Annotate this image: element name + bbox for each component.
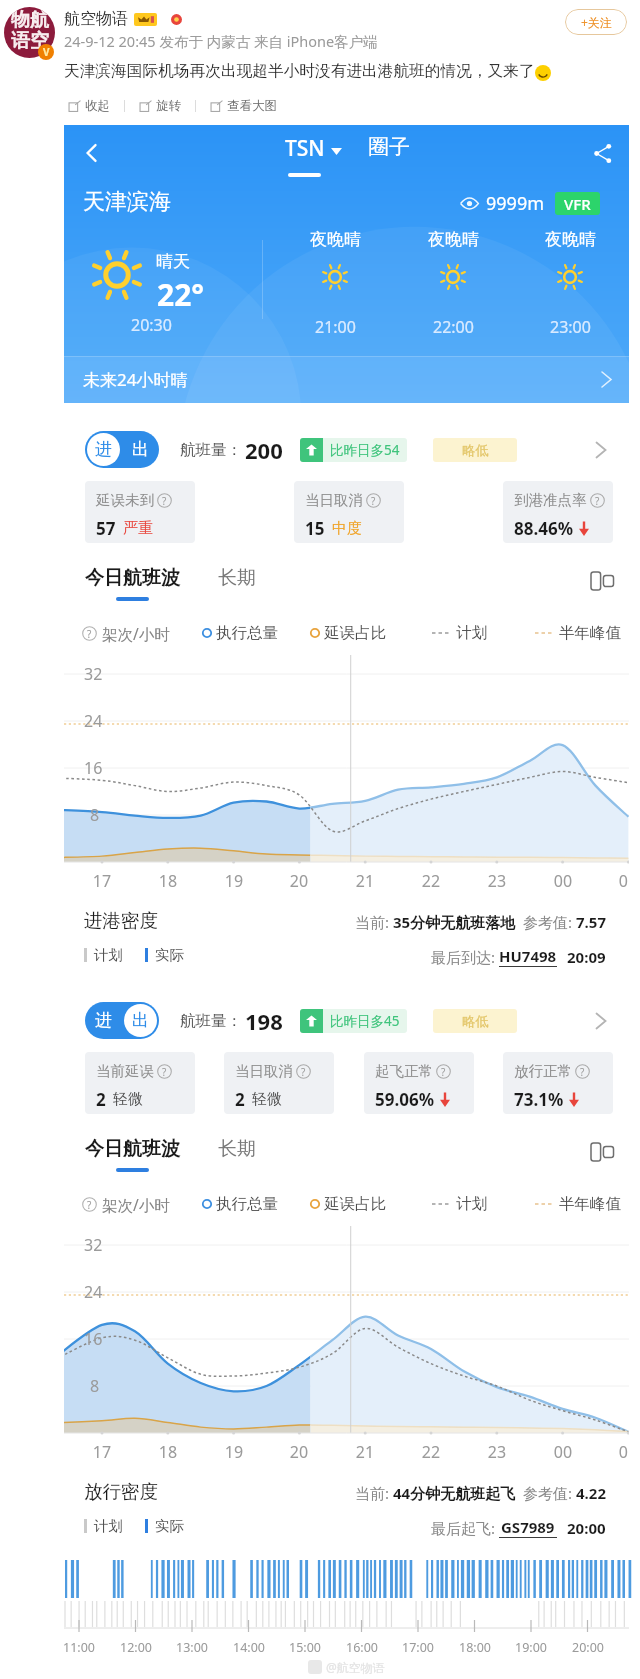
staticText: 20	[283, 1441, 315, 1463]
button[interactable]: Details	[587, 1007, 615, 1035]
staticText: ?	[87, 1198, 92, 1212]
button[interactable]: Full screen	[587, 1137, 617, 1167]
button[interactable]: 延误未到	[85, 481, 195, 543]
button[interactable]: 长期	[218, 1137, 256, 1161]
staticText: 12:00	[112, 1639, 160, 1656]
staticText: 44分钟无航班起飞	[393, 1483, 516, 1503]
button[interactable]: 到港准点率	[503, 481, 613, 543]
staticText: 18:00	[451, 1639, 499, 1656]
button[interactable]: 旋转	[135, 96, 185, 116]
staticText: 2	[96, 1088, 106, 1111]
button[interactable]: 当日取消	[224, 1052, 334, 1114]
staticText: 19	[218, 870, 250, 892]
staticText: 16	[84, 757, 103, 779]
staticText: 当日取消	[235, 1062, 293, 1080]
button[interactable]: 进	[85, 431, 159, 468]
staticText: 200	[245, 435, 283, 465]
staticText: 32	[84, 1234, 103, 1256]
staticText: 略低	[462, 442, 489, 459]
staticText: 参考值:	[523, 1483, 576, 1503]
staticText: 执行总量	[216, 623, 278, 643]
staticText: 轻微	[113, 1090, 143, 1109]
staticText: 半年峰值	[559, 1194, 621, 1214]
staticText: 2	[235, 1088, 245, 1111]
button[interactable]: 长期	[218, 566, 256, 590]
button[interactable]: 物	[4, 7, 55, 58]
staticText: 22°	[157, 274, 205, 315]
staticText: 20:09	[567, 947, 606, 967]
staticText: 16	[84, 1328, 103, 1350]
staticText: ?	[162, 494, 167, 508]
staticText: 语	[11, 29, 30, 53]
staticText: 当前:	[355, 912, 393, 932]
staticText: 延误占比	[324, 1194, 386, 1214]
button[interactable]: 收起	[64, 96, 114, 116]
staticText: 22:00	[433, 316, 474, 338]
button[interactable]: Full screen	[587, 566, 617, 596]
staticText: 19:00	[507, 1639, 555, 1656]
staticText: 73.1%	[514, 1088, 564, 1111]
button[interactable]: 当日取消	[294, 481, 404, 543]
staticText: 8	[90, 804, 100, 826]
button[interactable]: 进	[85, 1002, 159, 1039]
staticText: ?	[595, 494, 600, 508]
button[interactable]: 当前延误	[85, 1052, 195, 1114]
staticText: 空	[30, 29, 49, 53]
staticText: 放行正常	[514, 1062, 572, 1080]
button[interactable]: Share	[582, 133, 622, 173]
staticText: 架次/小时	[102, 1194, 170, 1215]
button[interactable]: TSN	[285, 134, 342, 177]
staticText: 17:00	[394, 1639, 442, 1656]
staticText: 13:00	[168, 1639, 216, 1656]
button[interactable]: Details	[587, 436, 615, 464]
staticText: 收起	[85, 98, 110, 114]
button[interactable]: 今日航班波	[85, 566, 180, 601]
button[interactable]: 圈子	[368, 134, 410, 160]
staticText: 22	[415, 870, 447, 892]
staticText: 24-9-12 20:45 发布于 内蒙古 来自 iPhone客户端	[64, 31, 378, 51]
staticText: 18	[152, 870, 184, 892]
staticText: 计划	[456, 623, 487, 643]
staticText: 19	[218, 1441, 250, 1463]
staticText: 当前:	[355, 1483, 393, 1503]
staticText: 当日取消	[305, 491, 363, 509]
staticText: 8	[90, 1375, 100, 1397]
staticText: 00	[547, 1441, 579, 1463]
staticText: 7.57	[576, 912, 606, 932]
button[interactable]: 查看大图	[206, 96, 281, 116]
staticText: 21	[349, 870, 381, 892]
staticText: TSN	[285, 134, 325, 163]
button[interactable]: 今日航班波	[85, 1137, 180, 1172]
staticText: ?	[301, 1065, 306, 1079]
staticText: ?	[162, 1065, 167, 1079]
staticText: 航	[30, 8, 49, 32]
button[interactable]: 起飞正常	[364, 1052, 474, 1114]
staticText: 查看大图	[227, 98, 277, 114]
staticText: 今日航班波	[85, 1137, 180, 1161]
button[interactable]: Back	[72, 133, 112, 173]
staticText: 23	[481, 1441, 513, 1463]
staticText: 15	[305, 517, 325, 540]
staticText: V	[43, 45, 50, 59]
staticText: 进	[95, 1010, 112, 1031]
staticText: @航空物语	[326, 1659, 385, 1675]
staticText: +关注	[581, 14, 612, 30]
staticText: 执行总量	[216, 1194, 278, 1214]
staticText: 参考值:	[523, 912, 576, 932]
staticText: 4.22	[576, 1483, 606, 1503]
button[interactable]: +关注	[565, 9, 627, 35]
staticText: 32	[84, 663, 103, 685]
staticText: 14:00	[225, 1639, 273, 1656]
staticText: ?	[580, 1065, 585, 1079]
staticText: 20:30	[131, 314, 172, 336]
staticText: 22	[415, 1441, 447, 1463]
staticText: 实际	[155, 1517, 184, 1535]
staticText: 夜晚晴	[545, 229, 596, 250]
button[interactable]: 未来24小时晴	[64, 356, 629, 403]
button[interactable]: 放行正常	[503, 1052, 613, 1114]
staticText: 最后起飞:	[431, 1518, 499, 1538]
staticText: 到港准点率	[514, 491, 587, 509]
staticText: 略低	[462, 1013, 489, 1030]
staticText: 20	[283, 870, 315, 892]
